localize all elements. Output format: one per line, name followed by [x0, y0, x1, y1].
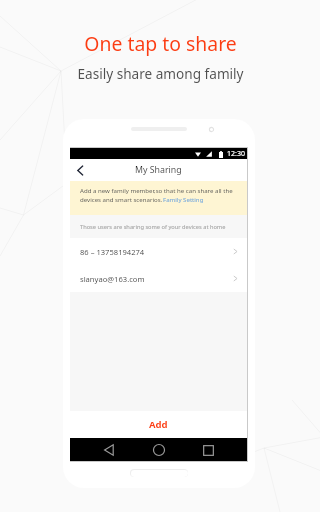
staticText: devices and smart scenarios.: [80, 195, 163, 203]
button[interactable]: Home: [149, 440, 169, 460]
staticText: Easily share among family: [77, 64, 244, 83]
staticText: One tap to share: [84, 30, 237, 56]
button[interactable]: Back: [70, 160, 90, 180]
button[interactable]: Add: [70, 411, 247, 438]
staticText: Add: [149, 418, 168, 431]
button[interactable]: Back: [99, 440, 119, 460]
staticText: Family Setting: [163, 195, 204, 203]
staticText: Those users are sharing some of your dev…: [80, 223, 226, 231]
staticText: Add a new family member,so that he can s…: [80, 186, 233, 194]
button[interactable]: 86 – 13758194274: [70, 238, 247, 265]
button[interactable]: Add a new family member,so that he can s…: [70, 181, 247, 215]
staticText: My Sharing: [135, 164, 182, 176]
staticText: 86 – 13758194274: [80, 247, 145, 257]
button[interactable]: slanyao@163.com: [70, 265, 247, 292]
staticText: 12:30: [227, 149, 245, 159]
staticText: slanyao@163.com: [80, 274, 145, 284]
button[interactable]: Recents: [198, 440, 218, 460]
